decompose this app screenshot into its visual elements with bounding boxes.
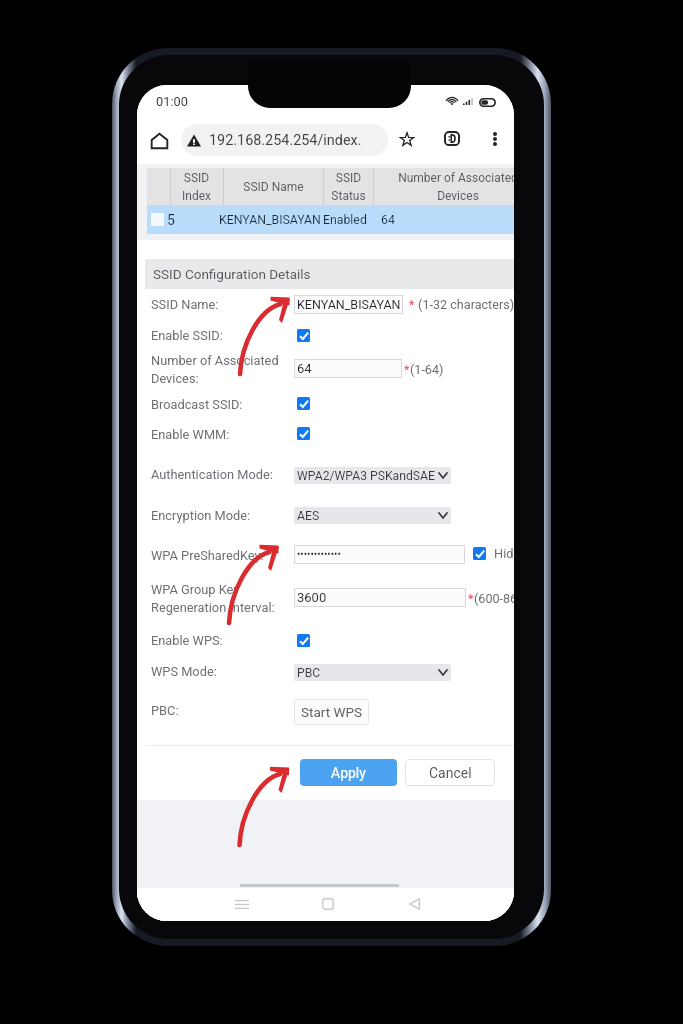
staticText: Regeneration Interval: (151, 600, 275, 615)
staticText: SSID Configuration Details (153, 266, 311, 282)
staticText: KENYAN_BISAYAN (219, 213, 321, 227)
staticText: WPS Mode: (151, 664, 217, 679)
staticText: Authentication Mode: (151, 467, 273, 482)
button[interactable]: Checked (297, 329, 310, 342)
staticText: Start WPS (301, 704, 362, 720)
staticText: Encryption Mode: (151, 508, 251, 523)
button[interactable]: 192.168.254.254/index. (181, 124, 388, 156)
staticText: * (409, 297, 415, 312)
staticText: WPA Group Key (151, 582, 240, 597)
staticText: WPA PreSharedKey: (151, 548, 264, 563)
staticText: Number of Associated Devices (398, 171, 514, 203)
staticText: PBC: (151, 703, 179, 718)
staticText: * (468, 591, 474, 606)
staticText: 01:00 (156, 94, 188, 109)
button[interactable]: Bookmark (392, 124, 421, 153)
staticText: (1-32 characters) (415, 297, 514, 312)
staticText: ••••••••••••• (297, 549, 341, 561)
staticText: Enable SSID: (151, 328, 223, 343)
staticText: Devices: (151, 371, 199, 386)
staticText: 3600 (297, 590, 327, 605)
staticText: Broadcast SSID: (151, 397, 243, 412)
button[interactable]: Checked (297, 427, 310, 440)
button[interactable]: AES (294, 507, 451, 524)
staticText: * (404, 362, 410, 377)
button[interactable]: Cancel (405, 759, 495, 786)
staticText: SSID Name: (151, 297, 219, 312)
button[interactable]: Apply (300, 759, 397, 786)
staticText: KENYAN_BISAYAN (297, 297, 401, 312)
staticText: 5 (167, 212, 175, 228)
staticText: SSID Name (243, 180, 304, 194)
staticText: SSID Status (331, 171, 366, 203)
staticText: Enable WMM: (151, 427, 230, 442)
staticText: AES (297, 509, 320, 523)
button[interactable]: Back (397, 887, 431, 921)
button[interactable]: Checked (297, 397, 310, 410)
staticText: (600-86 (474, 591, 514, 606)
staticText: Enabled (323, 213, 367, 227)
button[interactable]: Checked (473, 547, 486, 560)
button[interactable]: More options (480, 124, 509, 153)
staticText: 192.168.254.254/index. (209, 132, 362, 149)
button[interactable]: WPA2/WPA3 PSKandSAE (294, 467, 451, 484)
staticText: Cancel (429, 765, 472, 781)
staticText: (1-64) (410, 362, 444, 377)
button[interactable]: 5 (147, 205, 514, 234)
staticText: 64 (381, 213, 395, 227)
button[interactable]: Recents (225, 887, 259, 921)
button[interactable]: Checked (297, 634, 310, 647)
staticText: 64 (297, 361, 312, 376)
staticText: Enable WPS: (151, 633, 223, 648)
staticText: Apply (331, 765, 366, 781)
button[interactable]: PBC (294, 664, 451, 681)
button[interactable]: Home (143, 124, 176, 157)
staticText: WPA2/WPA3 PSKandSAE (297, 469, 435, 483)
button[interactable]: Home (311, 887, 345, 921)
staticText: Number of Associated (151, 353, 279, 368)
button[interactable]: Tabs (437, 124, 466, 153)
staticText: SSID Index (182, 171, 211, 203)
button[interactable]: Start WPS (294, 699, 369, 725)
staticText: PBC (297, 666, 321, 680)
staticText: Hide (494, 546, 514, 561)
